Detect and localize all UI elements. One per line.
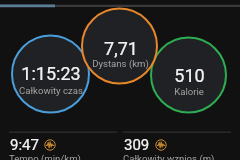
button[interactable] xyxy=(151,37,226,112)
staticText: 9:47 xyxy=(10,136,39,154)
other: Statistic xyxy=(44,139,56,151)
button[interactable] xyxy=(82,8,157,83)
staticText: Tempo (min/km) xyxy=(9,153,81,160)
other: Statistic xyxy=(155,139,167,151)
staticText: 309 xyxy=(124,136,150,154)
staticText: 510 xyxy=(174,65,205,86)
staticText: 1:15:23 xyxy=(21,63,81,84)
staticText: 7,71 xyxy=(104,38,138,59)
staticText: Całkowity wznios (m) xyxy=(123,153,215,160)
staticText: Kalorie xyxy=(174,86,204,97)
staticText: Całkowity czas xyxy=(19,85,83,96)
button[interactable] xyxy=(12,36,89,113)
staticText: Dystans (km) xyxy=(92,58,149,69)
